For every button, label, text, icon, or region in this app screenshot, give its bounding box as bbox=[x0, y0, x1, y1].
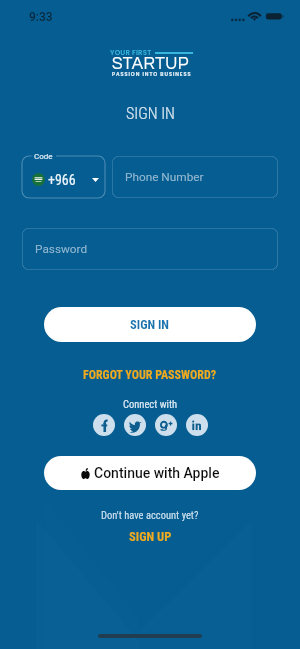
button[interactable]: Google Plus bbox=[155, 414, 177, 436]
button[interactable]: Facebook bbox=[93, 414, 115, 436]
staticText: FORGOT YOUR PASSWORD? bbox=[83, 368, 217, 382]
staticText: Continue with Apple bbox=[94, 465, 220, 481]
staticText: +966 bbox=[48, 172, 76, 188]
button[interactable]: LinkedIn bbox=[186, 414, 208, 436]
staticText: PASSION INTO BUSINESS bbox=[112, 71, 192, 78]
button[interactable]: +966 bbox=[22, 156, 105, 198]
button[interactable]: Twitter bbox=[124, 414, 146, 436]
button[interactable]: FORGOT YOUR PASSWORD? bbox=[77, 364, 223, 386]
staticText: SIGN IN bbox=[130, 317, 170, 332]
staticText: SIGN IN bbox=[126, 104, 175, 123]
staticText: STARTUP bbox=[112, 55, 189, 73]
button[interactable]: SIGN IN bbox=[44, 307, 256, 342]
staticText: 9:33 bbox=[29, 10, 53, 24]
staticText: SIGN UP bbox=[129, 529, 172, 544]
staticText: Don't have account yet? bbox=[101, 509, 199, 521]
staticText: Phone Number bbox=[125, 170, 204, 184]
button[interactable]: Password bbox=[22, 228, 278, 270]
staticText: Connect with bbox=[123, 398, 178, 410]
button[interactable]: SIGN UP bbox=[121, 527, 180, 546]
staticText: Password bbox=[35, 242, 88, 256]
button[interactable]: Phone Number bbox=[112, 156, 278, 198]
button[interactable]: Continue with Apple bbox=[44, 456, 256, 490]
staticText: Code bbox=[34, 152, 53, 161]
staticText: YOUR FIRST bbox=[110, 48, 152, 58]
